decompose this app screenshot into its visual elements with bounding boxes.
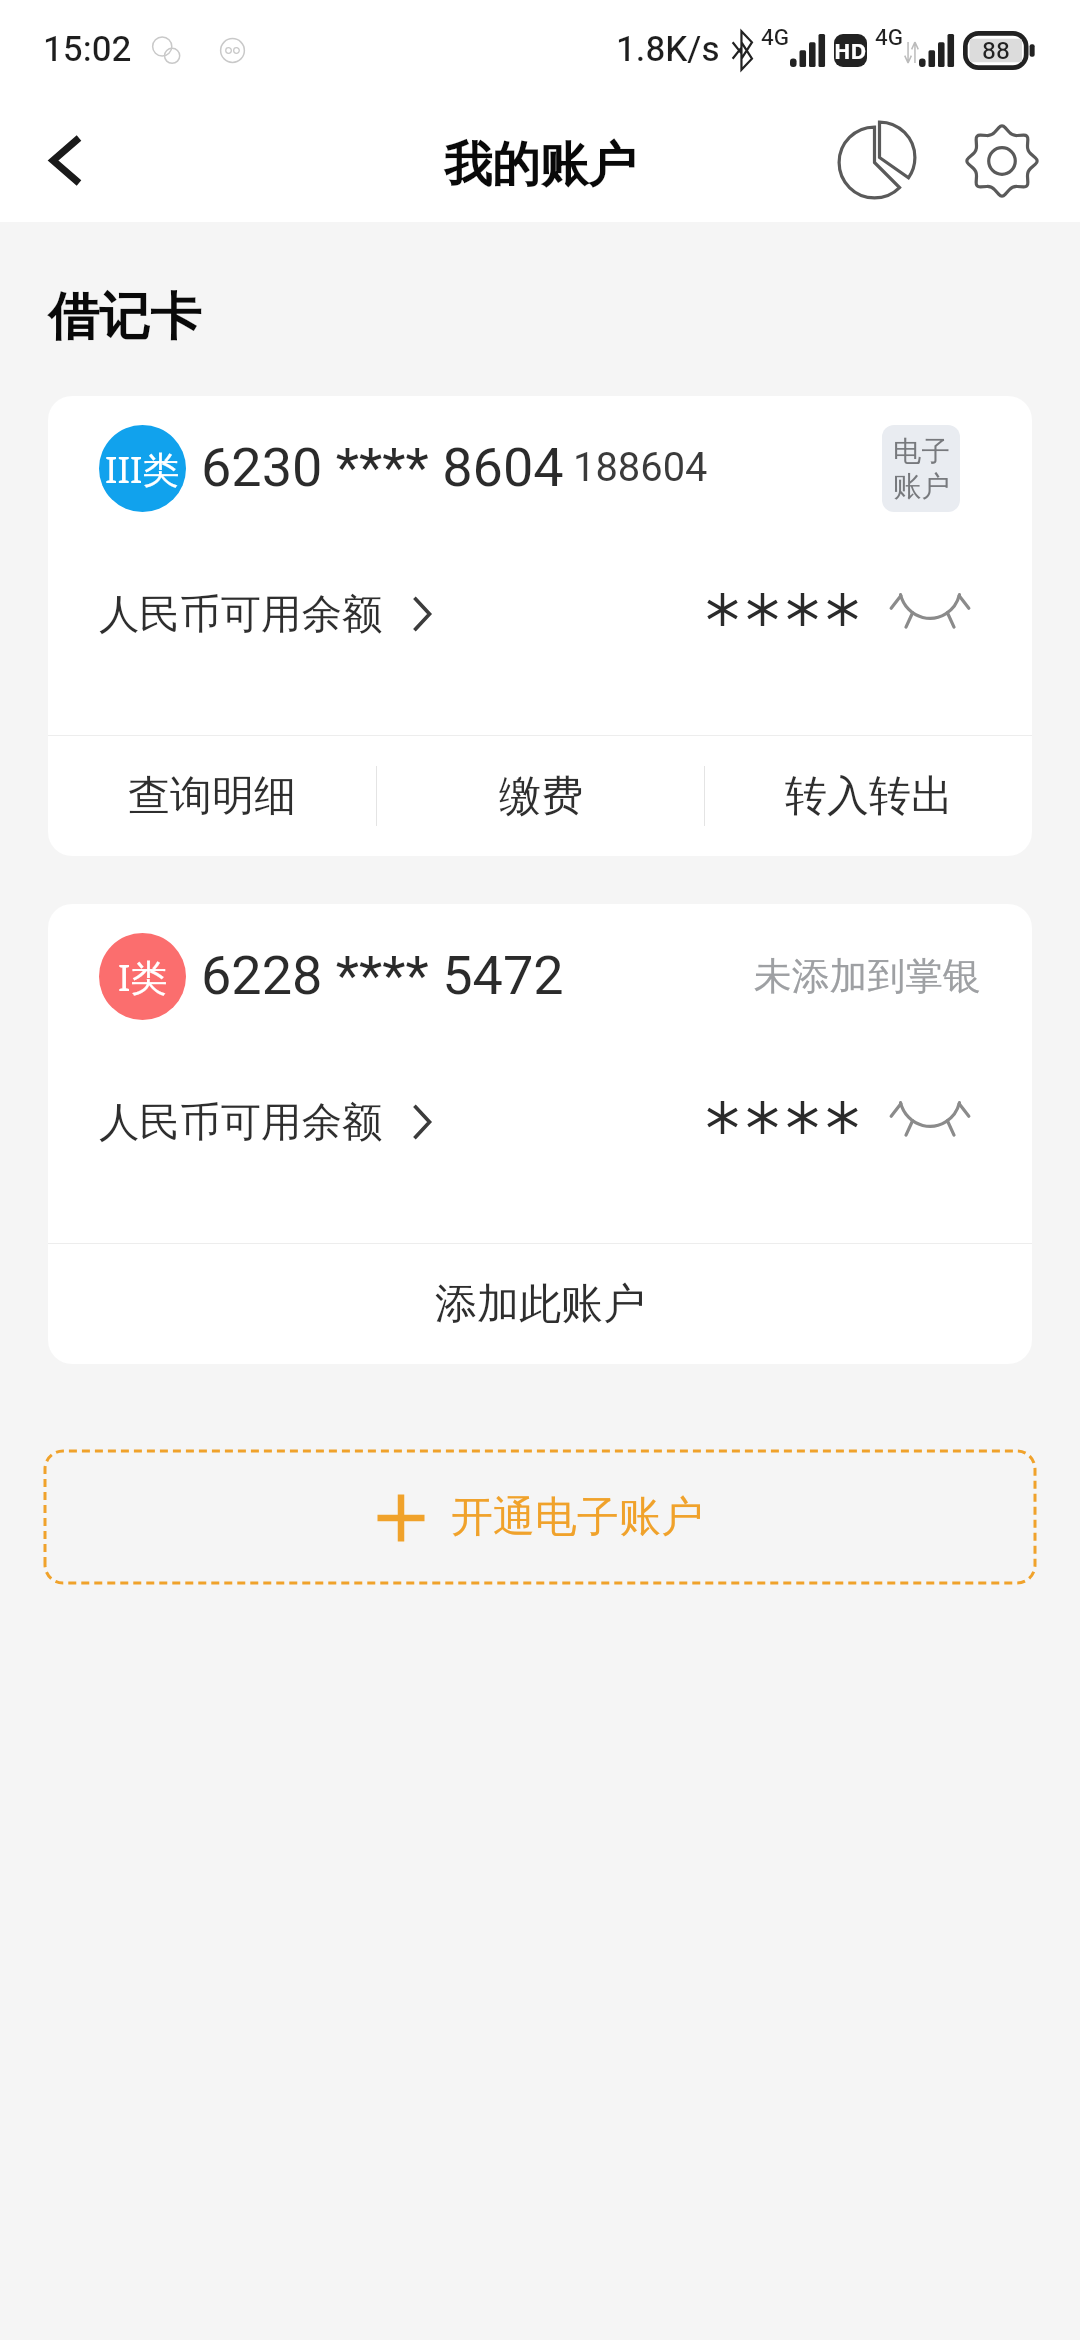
- staticText: 6228 **** 5472: [201, 937, 564, 1016]
- staticText: 借记卡: [48, 285, 201, 349]
- staticText: I类: [118, 952, 168, 1002]
- staticText: III类: [105, 444, 180, 494]
- staticText: 4G: [875, 21, 904, 54]
- button[interactable]: 添加此账户: [48, 1244, 1032, 1364]
- button[interactable]: Back: [6, 99, 126, 222]
- staticText: 查询明细: [128, 770, 296, 823]
- staticText: 188604: [573, 439, 708, 498]
- button[interactable]: 查询明细: [48, 736, 376, 856]
- button[interactable]: Statistics: [813, 99, 939, 222]
- staticText: 人民币可用余额: [99, 1097, 383, 1148]
- staticText: 缴费: [499, 770, 583, 823]
- staticText: 开通电子账户: [451, 1491, 703, 1544]
- button[interactable]: 缴费: [377, 736, 704, 856]
- button[interactable]: Show balance: [894, 582, 966, 633]
- staticText: 转入转出: [785, 770, 953, 823]
- staticText: 电子 账户: [893, 434, 950, 504]
- staticText: 未添加到掌银: [754, 953, 981, 1001]
- staticText: 6230 **** 8604: [201, 429, 564, 508]
- staticText: 我的账户: [444, 135, 636, 195]
- staticText: 4G: [761, 21, 790, 54]
- button[interactable]: Show balance: [894, 1090, 966, 1141]
- staticText: 添加此账户: [435, 1278, 645, 1331]
- button[interactable]: Settings: [939, 99, 1065, 222]
- staticText: 88: [982, 33, 1010, 69]
- staticText: 1.8K/s: [616, 24, 720, 76]
- button[interactable]: 人民币可用余额: [99, 541, 966, 687]
- staticText: HD: [834, 36, 867, 65]
- staticText: 15:02: [43, 24, 132, 76]
- button[interactable]: 转入转出: [705, 736, 1032, 856]
- button[interactable]: 人民币可用余额: [99, 1049, 966, 1195]
- staticText: 人民币可用余额: [99, 589, 383, 640]
- button[interactable]: 开通电子账户: [45, 1451, 1035, 1583]
